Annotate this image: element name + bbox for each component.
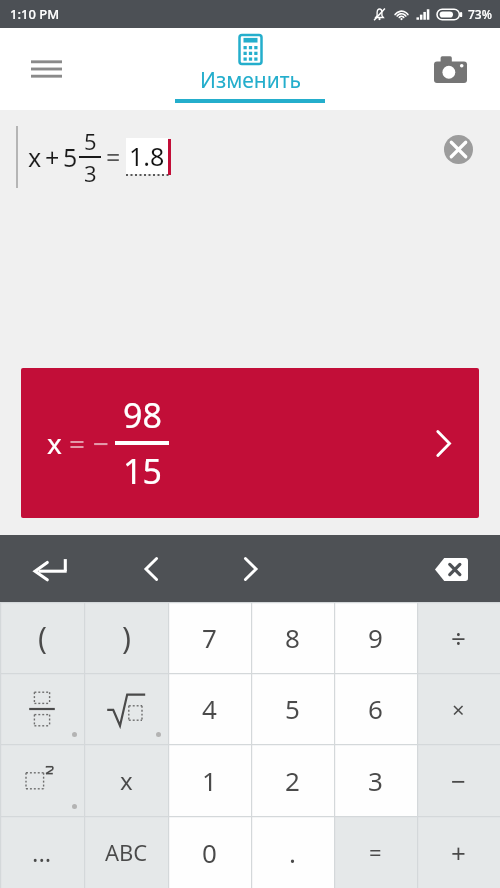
other: Show steps — [436, 430, 451, 457]
staticText: 0 — [202, 835, 217, 870]
staticText: . — [289, 835, 296, 870]
button[interactable]: 1 — [168, 744, 251, 816]
staticText: − — [451, 763, 466, 798]
staticText: 9 — [368, 620, 383, 655]
staticText: ... — [32, 836, 52, 869]
staticText: 5 — [285, 691, 300, 726]
button[interactable]: ) — [84, 602, 168, 673]
staticText: x — [120, 764, 133, 797]
staticText: 1.8 — [129, 139, 165, 173]
button[interactable]: + — [417, 816, 500, 888]
staticText: 5 — [63, 140, 78, 174]
button[interactable]: × — [417, 673, 500, 744]
button[interactable]: 5 — [251, 673, 334, 744]
staticText: 6 — [368, 691, 383, 726]
staticText: ( — [38, 617, 47, 658]
button[interactable]: x — [21, 368, 479, 518]
staticText: Изменить — [200, 66, 301, 95]
staticText: 4 — [202, 691, 217, 726]
staticText: 7 — [202, 620, 217, 655]
button[interactable]: Clear — [436, 127, 480, 171]
button[interactable]: ( — [0, 602, 84, 673]
button[interactable]: 8 — [251, 602, 334, 673]
staticText: + — [45, 140, 60, 174]
button[interactable]: Next — [224, 542, 278, 596]
button[interactable]: 6 — [334, 673, 417, 744]
button[interactable]: Menu — [16, 39, 76, 99]
button[interactable]: 0 — [168, 816, 251, 888]
staticText: = — [69, 424, 86, 462]
button[interactable]: Backspace — [424, 542, 478, 596]
button[interactable]: Fraction — [0, 673, 84, 744]
button[interactable]: 9 — [334, 602, 417, 673]
staticText: + — [451, 835, 466, 870]
staticText: 3 — [84, 158, 97, 188]
staticText: 3 — [368, 763, 383, 798]
staticText: ) — [122, 617, 131, 658]
button[interactable]: Изменить — [165, 28, 335, 110]
staticText: = — [369, 837, 382, 867]
staticText: 1:10 PM — [10, 5, 60, 23]
button[interactable]: ABC — [84, 816, 168, 888]
staticText: ABC — [105, 837, 148, 867]
button[interactable]: . — [251, 816, 334, 888]
staticText: − — [93, 424, 110, 462]
button[interactable]: ÷ — [417, 602, 500, 673]
button[interactable]: Square root — [84, 673, 168, 744]
button[interactable]: − — [417, 744, 500, 816]
button[interactable]: 3 — [334, 744, 417, 816]
staticText: ÷ — [451, 620, 466, 655]
staticText: = — [106, 140, 121, 174]
staticText: 2 — [285, 763, 300, 798]
button[interactable]: 2 — [251, 744, 334, 816]
staticText: 98 — [123, 392, 162, 438]
staticText: 15 — [123, 448, 162, 494]
button[interactable]: x — [84, 744, 168, 816]
staticText: × — [452, 694, 465, 724]
button[interactable]: Enter — [22, 541, 78, 597]
button[interactable]: 4 — [168, 673, 251, 744]
staticText: 5 — [84, 126, 97, 156]
staticText: x — [47, 424, 62, 462]
staticText: 73% — [468, 6, 492, 22]
button[interactable]: = — [334, 816, 417, 888]
button[interactable]: 7 — [168, 602, 251, 673]
button[interactable]: Previous — [124, 542, 178, 596]
button[interactable]: ... — [0, 816, 84, 888]
staticText: x — [28, 140, 42, 174]
staticText: 1 — [202, 763, 217, 798]
button[interactable]: Camera — [422, 41, 478, 97]
button[interactable]: Power — [0, 744, 84, 816]
staticText: 8 — [285, 620, 300, 655]
